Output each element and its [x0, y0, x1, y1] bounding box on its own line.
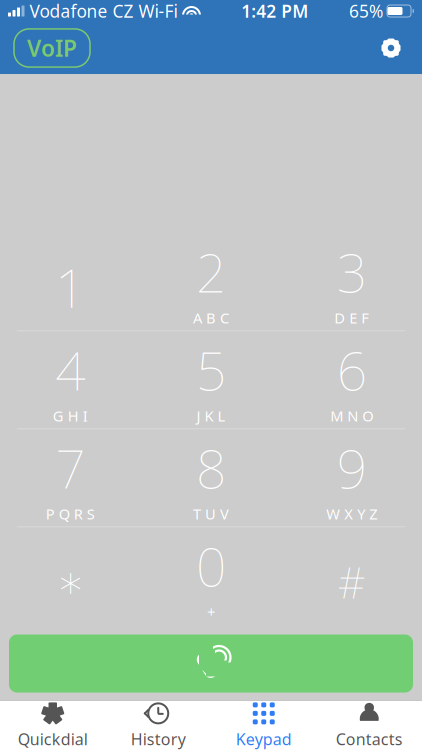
staticText: History [131, 728, 186, 750]
staticText: 2 [196, 236, 226, 307]
button[interactable]: 9 [281, 429, 422, 526]
staticText: D E F [334, 308, 369, 328]
staticText: 4 [55, 334, 85, 405]
button[interactable]: # [281, 527, 422, 624]
staticText: W X Y Z [326, 504, 377, 524]
staticText: VoIP [27, 33, 77, 63]
button[interactable]: History [105, 701, 211, 750]
staticText: ∗ [56, 556, 84, 608]
staticText: + [207, 602, 215, 622]
staticText: J K L [196, 406, 225, 426]
button[interactable]: Call [9, 634, 413, 692]
staticText: 6 [337, 334, 367, 405]
staticText: 7 [55, 432, 85, 503]
button[interactable]: 5 [141, 331, 281, 428]
staticText: 65% [349, 0, 383, 22]
staticText: T U V [193, 504, 229, 524]
button[interactable]: Contacts [316, 701, 422, 750]
button[interactable]: 4 [0, 331, 141, 428]
button[interactable]: Keypad [211, 701, 316, 750]
staticText: 5 [196, 334, 226, 405]
button[interactable]: 1 [0, 233, 141, 330]
button[interactable]: 0 [141, 527, 281, 624]
button[interactable]: 7 [0, 429, 141, 526]
button[interactable]: Settings [374, 31, 408, 65]
button[interactable]: 6 [281, 331, 422, 428]
staticText: 0 [196, 530, 226, 601]
staticText: Quickdial [18, 728, 88, 750]
button[interactable]: VoIP [14, 29, 90, 67]
staticText: Vodafone CZ Wi-Fi [29, 0, 177, 22]
staticText: A B C [193, 308, 229, 328]
staticText: 8 [196, 432, 226, 503]
staticText: G H I [53, 406, 88, 426]
button[interactable]: 8 [141, 429, 281, 526]
button[interactable]: 2 [141, 233, 281, 330]
staticText: Keypad [236, 728, 292, 750]
staticText: 1 [55, 252, 85, 322]
staticText: 9 [337, 432, 367, 503]
staticText: P Q R S [46, 504, 95, 524]
staticText: 1:42 PM [241, 0, 308, 22]
staticText: M N O [330, 406, 373, 426]
staticText: Contacts [336, 728, 403, 750]
staticText: # [338, 554, 366, 610]
button[interactable]: Quickdial [0, 701, 105, 750]
button[interactable]: 3 [281, 233, 422, 330]
staticText: 3 [337, 236, 367, 307]
